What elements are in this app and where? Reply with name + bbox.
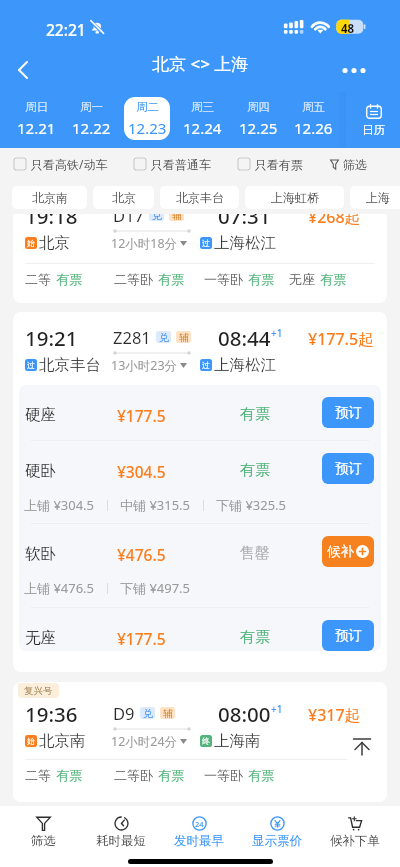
staticText: 终: [202, 736, 210, 746]
button[interactable]: 候补下单: [316, 806, 394, 857]
staticText: 周日: [25, 100, 48, 114]
staticText: 上海: [366, 190, 390, 205]
staticText: 24: [195, 819, 204, 829]
staticText: 上铺 ¥476.5: [24, 579, 95, 597]
staticText: 有票: [158, 271, 184, 287]
staticText: ¥304.5: [117, 461, 166, 482]
button[interactable]: 周五: [288, 94, 338, 142]
staticText: 兑: [143, 707, 153, 719]
staticText: 19:21: [25, 324, 78, 352]
staticText: 过: [202, 238, 210, 248]
staticText: ¥177.5起: [308, 328, 375, 350]
staticText: +1: [271, 326, 283, 340]
staticText: 下铺 ¥497.5: [120, 579, 191, 597]
staticText: 上海松江: [214, 355, 276, 375]
staticText: 二等: [25, 271, 51, 287]
staticText: 周三: [191, 100, 214, 114]
button[interactable]: 复兴号: [13, 682, 387, 802]
button[interactable]: 周日: [11, 94, 61, 142]
button[interactable]: 预订: [322, 620, 374, 651]
button[interactable]: 北京南: [12, 186, 87, 209]
staticText: 辅: [172, 209, 182, 221]
staticText: 上海松江: [214, 233, 276, 253]
staticText: 周五: [302, 100, 325, 114]
staticText: 有票: [248, 767, 274, 783]
staticText: 12小时18分: [111, 235, 178, 252]
button[interactable]: 只看有票: [238, 148, 303, 180]
staticText: 19:36: [25, 700, 78, 728]
button[interactable]: 显示票价: [238, 806, 316, 857]
staticText: 上铺 ¥304.5: [24, 496, 95, 514]
button[interactable]: More options: [336, 52, 368, 78]
staticText: 兑: [152, 209, 162, 221]
staticText: 显示票价: [252, 833, 302, 849]
staticText: 辅: [179, 331, 189, 343]
staticText: 始: [27, 238, 35, 248]
button[interactable]: 周三: [177, 94, 227, 142]
button[interactable]: 上海: [350, 186, 400, 209]
staticText: 北京 <> 上海: [152, 52, 249, 75]
staticText: 售罄: [240, 544, 270, 563]
staticText: 有票: [56, 767, 82, 783]
staticText: ¥177.5: [117, 405, 166, 426]
button[interactable]: Back: [7, 52, 39, 84]
staticText: 过: [27, 360, 35, 370]
button[interactable]: 周四: [233, 94, 283, 142]
staticText: 12.21: [17, 118, 56, 138]
staticText: 筛选: [343, 157, 367, 172]
staticText: 一等卧: [204, 271, 243, 287]
staticText: 北京: [39, 233, 70, 253]
button[interactable]: 候补: [322, 536, 374, 567]
staticText: 有票: [240, 461, 270, 480]
staticText: 19:18: [25, 202, 78, 230]
button[interactable]: 19:18: [13, 190, 387, 303]
staticText: 有票: [158, 767, 184, 783]
staticText: 辅: [163, 707, 173, 719]
button[interactable]: 耗时最短: [82, 806, 160, 857]
staticText: ¥268起: [308, 206, 361, 228]
button[interactable]: 北京丰台: [160, 186, 239, 209]
button[interactable]: 北京: [93, 186, 154, 209]
button[interactable]: 预订: [322, 397, 374, 428]
button[interactable]: 24: [160, 806, 238, 857]
button[interactable]: 筛选: [330, 148, 367, 180]
staticText: 有票: [56, 271, 82, 287]
staticText: 北京丰台: [39, 355, 101, 375]
staticText: 北京: [112, 190, 136, 205]
staticText: 22:21: [46, 19, 86, 40]
staticText: ¥476.5: [117, 544, 166, 565]
staticText: 硬卧: [25, 461, 56, 481]
staticText: 只看普通车: [151, 157, 211, 172]
staticText: 北京南: [32, 190, 68, 205]
staticText: 二等卧: [114, 767, 153, 783]
staticText: 48: [341, 21, 355, 37]
staticText: 周四: [247, 100, 270, 114]
staticText: 兑: [159, 331, 169, 343]
button[interactable]: Back to top: [342, 726, 382, 766]
staticText: 12.26: [294, 118, 333, 138]
staticText: 预订: [335, 404, 362, 421]
button[interactable]: 日历: [346, 92, 400, 148]
staticText: 下铺 ¥325.5: [216, 496, 287, 514]
staticText: 候补: [327, 543, 354, 560]
button[interactable]: 筛选: [5, 806, 82, 857]
button[interactable]: 只看普通车: [134, 148, 211, 180]
button[interactable]: 预订: [322, 453, 374, 484]
staticText: 12.25: [239, 118, 278, 138]
staticText: 无座: [289, 271, 315, 287]
staticText: 北京丰台: [176, 190, 224, 205]
staticText: 有票: [240, 405, 270, 424]
button[interactable]: 上海虹桥: [245, 186, 344, 209]
staticText: 中铺 ¥315.5: [120, 496, 191, 514]
staticText: 候补下单: [330, 833, 380, 849]
staticText: 上海南: [214, 731, 261, 751]
button[interactable]: 周一: [66, 94, 116, 142]
staticText: 预订: [335, 627, 362, 644]
staticText: 软卧: [25, 544, 56, 564]
staticText: 硬座: [25, 405, 56, 425]
button[interactable]: 周二: [122, 94, 172, 142]
button[interactable]: 只看高铁/动车: [14, 148, 108, 180]
staticText: 07:31: [218, 202, 271, 230]
staticText: 只看有票: [255, 157, 303, 172]
staticText: D17: [113, 204, 144, 226]
